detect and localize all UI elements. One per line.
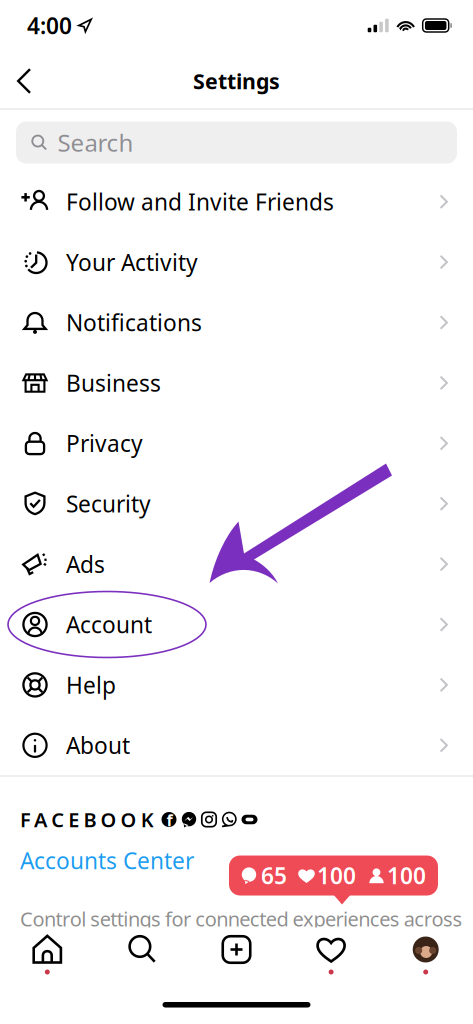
staticText: Account <box>66 609 152 639</box>
staticText: Ads <box>66 549 105 579</box>
button[interactable]: About <box>0 715 473 775</box>
staticText: Notifications <box>66 307 202 337</box>
button[interactable]: Business <box>0 353 473 413</box>
button[interactable]: Notifications <box>0 292 473 353</box>
staticText: Control settings for connected experienc… <box>20 905 462 932</box>
staticText: Your Activity <box>66 247 198 277</box>
button[interactable]: Accounts Center <box>0 841 473 879</box>
button[interactable]: Home <box>0 927 95 987</box>
staticText: Business <box>66 368 161 398</box>
staticText: Security <box>66 489 151 519</box>
staticText: f <box>166 809 172 831</box>
button[interactable]: Activity <box>284 927 378 987</box>
staticText: 65 <box>261 860 287 890</box>
button[interactable]: Create <box>189 927 284 987</box>
staticText: Accounts Center <box>20 845 194 875</box>
button[interactable]: Ads <box>0 534 473 594</box>
staticText: About <box>66 730 130 760</box>
button[interactable]: Help <box>0 655 473 715</box>
button[interactable]: Security <box>0 473 473 534</box>
button[interactable]: Privacy <box>0 413 473 473</box>
button[interactable]: Profile <box>378 927 473 987</box>
button[interactable]: Your Activity <box>0 232 473 292</box>
staticText: 100 <box>387 860 426 890</box>
staticText: FACEBOOK <box>20 806 154 833</box>
button[interactable]: Back <box>0 53 46 108</box>
staticText: Settings <box>193 67 280 95</box>
button[interactable]: Follow and Invite Friends <box>0 171 473 232</box>
button[interactable]: Search <box>95 927 189 987</box>
staticText: Follow and Invite Friends <box>66 187 334 217</box>
staticText: 100 <box>317 860 356 890</box>
staticText: Privacy <box>66 428 143 458</box>
staticText: Search <box>57 127 133 158</box>
button[interactable]: Account <box>0 594 473 655</box>
staticText: 4:00 <box>27 10 72 40</box>
staticText: Help <box>66 670 116 700</box>
